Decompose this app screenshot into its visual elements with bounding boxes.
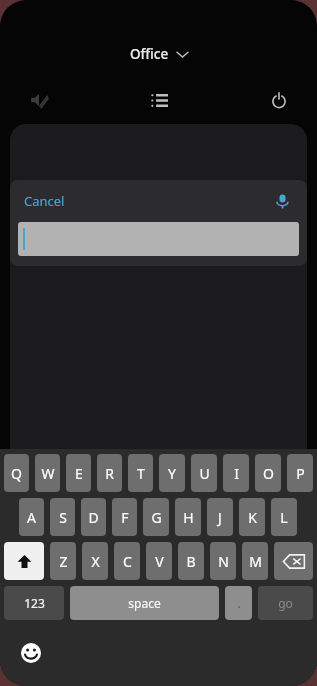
button[interactable]: Y [159,454,185,492]
button[interactable]: I [223,454,249,492]
button[interactable]: T [128,454,153,492]
button[interactable]: 123 [4,586,64,620]
staticText: T [137,464,145,483]
staticText: L [280,508,288,527]
button[interactable]: Backspace [274,542,313,580]
button[interactable] [18,222,299,256]
button[interactable]: Shift [4,542,44,580]
button[interactable]: U [191,454,217,492]
button[interactable]: M [242,542,268,580]
staticText: Z [59,552,68,571]
button[interactable]: W [35,454,60,492]
staticText: F [121,508,129,527]
button[interactable]: go [258,586,313,620]
button[interactable]: V [146,542,172,580]
button[interactable]: space [70,586,219,620]
button[interactable]: A [19,498,44,536]
button[interactable]: L [271,498,297,536]
button[interactable]: F [112,498,137,536]
button[interactable]: Emoji [17,639,45,667]
staticText: A [27,508,36,527]
staticText: 123 [24,595,45,611]
button[interactable]: Voice input [267,186,297,216]
button[interactable]: G [143,498,169,536]
button[interactable]: C [114,542,140,580]
button[interactable]: H [175,498,201,536]
staticText: J [218,508,222,527]
staticText: Q [11,464,22,483]
staticText: O [263,464,274,483]
staticText: go [278,595,293,611]
staticText: U [199,464,210,483]
staticText: Cancel [24,192,65,210]
staticText: D [88,508,99,527]
staticText: N [218,552,229,571]
button[interactable]: E [66,454,91,492]
staticText: B [186,552,196,571]
staticText: C [123,552,132,571]
button[interactable]: Cancel [18,188,71,214]
staticText: Y [168,464,176,483]
staticText: E [75,464,83,483]
button[interactable]: Power [261,82,297,118]
button[interactable]: X [82,542,108,580]
staticText: S [59,508,67,527]
button[interactable]: D [81,498,106,536]
staticText: R [105,464,114,483]
staticText: H [183,508,194,527]
button[interactable]: B [178,542,204,580]
button[interactable]: List [141,82,177,118]
button[interactable]: Q [4,454,29,492]
staticText: Office [130,45,169,63]
staticText: P [296,464,305,483]
staticText: K [248,508,257,527]
staticText: I [234,464,239,483]
staticText: space [128,595,161,611]
button[interactable]: R [97,454,122,492]
button[interactable]: J [207,498,233,536]
staticText: M [249,552,262,571]
button[interactable]: N [210,542,236,580]
button[interactable]: . [225,586,252,620]
staticText: V [155,552,164,571]
staticText: G [151,508,162,527]
button[interactable]: P [287,454,313,492]
staticText: W [41,464,55,483]
button[interactable]: O [255,454,281,492]
button[interactable]: K [239,498,265,536]
button[interactable]: Office [124,42,194,66]
button[interactable]: Mute [22,83,56,117]
button[interactable]: Z [50,542,76,580]
staticText: . [237,595,241,611]
button[interactable]: S [50,498,75,536]
staticText: X [91,552,100,571]
